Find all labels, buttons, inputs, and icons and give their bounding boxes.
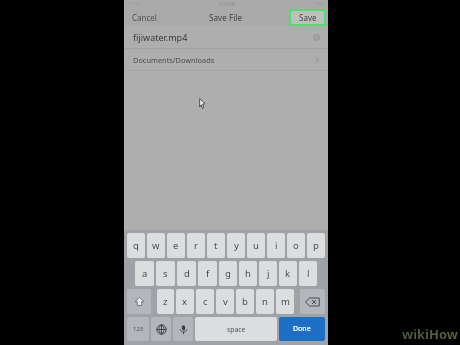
button[interactable]: e bbox=[167, 233, 185, 258]
button[interactable]: t bbox=[207, 233, 225, 258]
button[interactable]: Backspace bbox=[300, 289, 325, 314]
button[interactable]: n bbox=[256, 289, 274, 314]
button[interactable]: w bbox=[147, 233, 165, 258]
button[interactable]: l bbox=[299, 261, 317, 286]
staticText: i bbox=[275, 239, 278, 252]
button[interactable]: Change keyboard language bbox=[151, 317, 171, 341]
staticText: l bbox=[307, 267, 310, 280]
button[interactable]: b bbox=[236, 289, 254, 314]
button[interactable]: p bbox=[307, 233, 325, 258]
staticText: e bbox=[173, 239, 179, 252]
button[interactable]: q bbox=[127, 233, 145, 258]
button[interactable]: u bbox=[247, 233, 265, 258]
button[interactable]: Documents/Downloads bbox=[124, 49, 328, 70]
staticText: s bbox=[163, 267, 168, 280]
button[interactable]: z bbox=[157, 289, 174, 314]
staticText: t bbox=[214, 239, 218, 252]
staticText: n bbox=[262, 295, 268, 308]
button[interactable]: space bbox=[195, 317, 277, 341]
button[interactable]: y bbox=[227, 233, 245, 258]
staticText: d bbox=[184, 267, 190, 280]
staticText: space bbox=[227, 325, 246, 334]
staticText: v bbox=[223, 295, 228, 308]
button[interactable]: s bbox=[156, 261, 175, 286]
button[interactable]: i bbox=[267, 233, 285, 258]
staticText: m bbox=[281, 295, 290, 308]
staticText: Done bbox=[293, 324, 311, 334]
button[interactable]: fijiwater.mp4 bbox=[124, 26, 328, 48]
staticText: Documents/Downloads bbox=[133, 55, 215, 65]
staticText: How bbox=[429, 325, 458, 343]
button[interactable]: Shift bbox=[127, 289, 151, 314]
staticText: y bbox=[234, 239, 239, 252]
staticText: r bbox=[194, 239, 198, 252]
staticText: w bbox=[152, 239, 160, 252]
staticText: 3:14 PM bbox=[219, 1, 236, 7]
staticText: wiki bbox=[402, 325, 429, 343]
button[interactable]: Clear text bbox=[313, 34, 320, 41]
staticText: u bbox=[253, 239, 259, 252]
staticText: k bbox=[285, 267, 291, 280]
staticText: 99% bbox=[315, 1, 324, 7]
button[interactable]: v bbox=[216, 289, 234, 314]
button[interactable]: Dictation bbox=[173, 317, 193, 341]
button[interactable]: o bbox=[287, 233, 305, 258]
staticText: p bbox=[313, 239, 319, 252]
button[interactable]: d bbox=[177, 261, 196, 286]
staticText: f bbox=[206, 267, 210, 280]
staticText: fijiwater.mp4 bbox=[133, 31, 188, 43]
button[interactable]: j bbox=[259, 261, 277, 286]
button[interactable]: r bbox=[187, 233, 205, 258]
button[interactable]: Done bbox=[279, 317, 325, 341]
button[interactable]: Cancel bbox=[130, 10, 159, 25]
staticText: z bbox=[163, 295, 168, 308]
button[interactable]: k bbox=[279, 261, 297, 286]
staticText: x bbox=[182, 295, 188, 308]
button[interactable]: c bbox=[196, 289, 214, 314]
staticText: Save bbox=[299, 12, 317, 23]
button[interactable]: a bbox=[135, 261, 154, 286]
staticText: Save File bbox=[209, 12, 243, 23]
button[interactable]: f bbox=[198, 261, 217, 286]
button[interactable]: m bbox=[276, 289, 294, 314]
staticText: o bbox=[293, 239, 299, 252]
staticText: b bbox=[242, 295, 248, 308]
button[interactable]: Save bbox=[291, 11, 324, 24]
staticText: j bbox=[267, 267, 270, 280]
staticText: 123 bbox=[133, 325, 144, 333]
staticText: c bbox=[203, 295, 208, 308]
staticText: h bbox=[245, 267, 251, 280]
button[interactable]: x bbox=[176, 289, 194, 314]
staticText: a bbox=[142, 267, 148, 280]
button[interactable]: 123 bbox=[127, 317, 149, 341]
button[interactable]: g bbox=[219, 261, 237, 286]
staticText: Cancel bbox=[132, 12, 157, 23]
staticText: ıllı T1S bbox=[128, 1, 141, 7]
staticText: g bbox=[225, 267, 231, 280]
staticText: q bbox=[133, 239, 139, 252]
button[interactable]: h bbox=[239, 261, 257, 286]
